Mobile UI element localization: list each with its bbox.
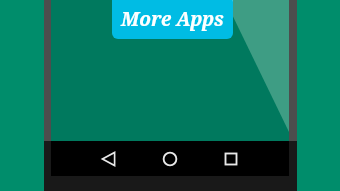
- button[interactable]: Back: [98, 148, 120, 170]
- button[interactable]: Home: [159, 148, 181, 170]
- button[interactable]: Recent apps: [220, 148, 242, 170]
- staticText: More Apps: [121, 6, 224, 32]
- button[interactable]: More Apps: [112, 0, 233, 39]
